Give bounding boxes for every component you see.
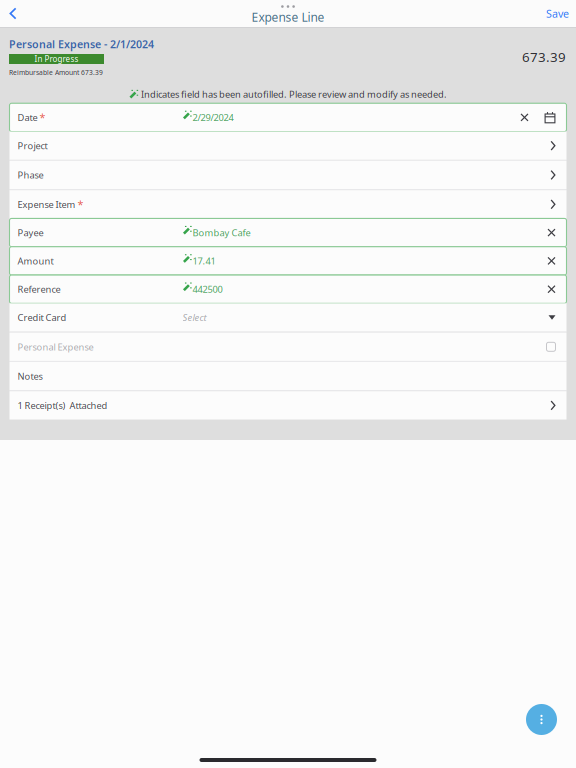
staticText: * [77,197,83,211]
staticText: 17.41 [192,255,215,267]
button[interactable]: Save [546,0,576,27]
button[interactable]: Back [0,0,26,27]
button[interactable]: Expense Item [9,190,566,218]
staticText: Notes [17,370,42,382]
staticText: 2/29/2024 [192,111,233,124]
staticText: * [39,110,45,124]
staticText: Reimbursable Amount 673.39 [9,68,103,77]
staticText: Select [182,311,206,324]
staticText: In Progress [34,54,78,64]
staticText: Expense Item [17,198,75,210]
staticText: 673.39 [522,48,566,66]
staticText: 442500 [192,283,222,295]
button[interactable]: Project [9,131,566,160]
button[interactable]: Reference [9,275,566,303]
staticText: Save [546,6,569,21]
staticText: Indicates field has been autofilled. Ple… [141,88,447,100]
staticText: 1 Receipt(s) Attached [17,399,107,412]
staticText: Amount [17,255,53,267]
staticText: Date [17,111,37,124]
staticText: Payee [17,226,43,239]
button[interactable]: Phase [9,161,566,189]
staticText: Phase [17,169,43,181]
button[interactable]: Credit Card [9,303,566,332]
staticText: Personal Expense - 2/1/2024 [9,37,154,51]
button[interactable]: Amount [9,247,566,275]
staticText: Expense Line [251,9,324,25]
staticText: Bombay Cafe [192,226,250,239]
button[interactable]: Notes [9,362,566,390]
button[interactable]: Personal Expense [9,333,566,361]
button[interactable]: 1 Receipt(s) Attached [9,391,566,419]
button[interactable]: Date [9,103,566,131]
button[interactable]: Payee [9,218,566,247]
button[interactable]: More actions [526,704,557,735]
staticText: Project [17,139,47,152]
staticText: Personal Expense [17,341,93,353]
staticText: Credit Card [17,311,66,324]
staticText: Reference [17,283,60,295]
